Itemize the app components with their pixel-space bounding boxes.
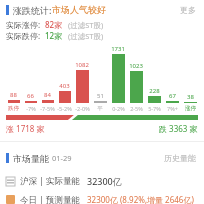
staticText: 今日 | 预测量能 xyxy=(20,194,81,204)
staticText: -7% xyxy=(26,105,36,112)
staticText: 67 xyxy=(169,92,176,100)
staticText: (过滤ST股) xyxy=(68,31,104,41)
staticText: 82家 xyxy=(45,19,63,30)
staticText: 32300亿 (8.92%,增量 2646亿) xyxy=(87,194,194,204)
button[interactable]: 更多 xyxy=(180,5,196,15)
staticText: 5-7% xyxy=(148,105,161,112)
button[interactable]: 预测量能图例 xyxy=(0,194,204,204)
staticText: 88 xyxy=(10,91,17,99)
staticText: 实际跌停: xyxy=(6,30,41,41)
staticText: 历史量能 xyxy=(164,153,196,163)
staticText: 更多 xyxy=(180,5,196,15)
staticText: 沪深 | 实际量能 xyxy=(20,175,81,187)
other: 实际量能图例 xyxy=(6,177,15,186)
staticText: 跌 3363 家 xyxy=(159,123,198,134)
button[interactable]: 涨跌统计: xyxy=(0,0,204,19)
staticText: 市场人气较好 xyxy=(52,4,106,15)
staticText: 跌停 xyxy=(8,105,19,112)
staticText: 1023 xyxy=(129,62,143,70)
staticText: 66 xyxy=(27,92,34,100)
staticText: 涨停 xyxy=(185,105,196,112)
staticText: 1082 xyxy=(75,61,89,69)
staticText: 涨 1718 家 xyxy=(6,123,45,134)
staticText: 市场量能 xyxy=(13,153,49,164)
staticText: 12家 xyxy=(45,30,63,41)
other: 预测量能图例 xyxy=(6,195,15,204)
staticText: 38 xyxy=(187,93,194,101)
staticText: 84 xyxy=(44,91,51,99)
staticText: 403 xyxy=(59,82,70,90)
staticText: 01-29 xyxy=(52,153,72,163)
staticText: -7-5% xyxy=(40,105,55,112)
staticText: 平 xyxy=(97,105,103,112)
staticText: 涨跌统计: xyxy=(13,4,52,16)
staticText: -5-2% xyxy=(57,105,72,112)
button[interactable]: 实际量能图例 xyxy=(0,173,204,189)
staticText: 1731 xyxy=(111,45,125,53)
staticText: 32300亿 xyxy=(87,175,122,187)
staticText: 228 xyxy=(149,87,160,95)
staticText: 0-2% xyxy=(112,105,125,112)
button[interactable]: 市场量能 xyxy=(0,149,204,167)
staticText: 51 xyxy=(97,92,104,100)
staticText: 实际涨停: xyxy=(6,19,41,30)
staticText: 7%+ xyxy=(167,105,178,112)
staticText: (过滤ST股) xyxy=(68,20,104,30)
staticText: 2-5% xyxy=(130,105,143,112)
button[interactable]: 历史量能 xyxy=(164,153,196,163)
staticText: -2-0% xyxy=(75,105,90,112)
